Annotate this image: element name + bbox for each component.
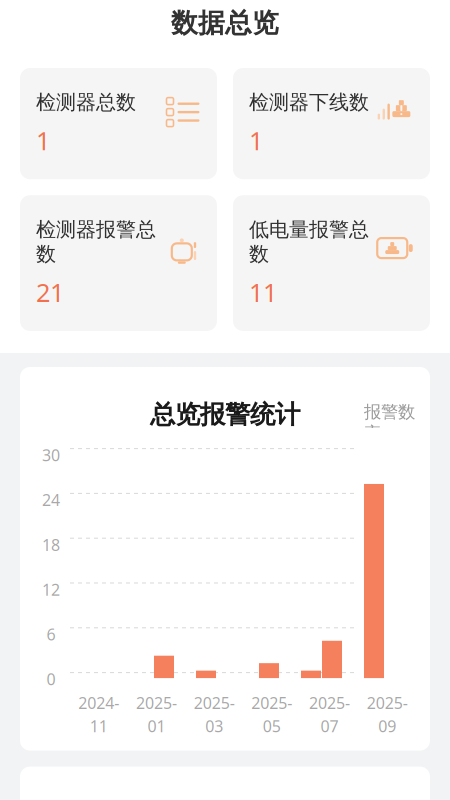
- button[interactable]: 检测器下线数: [233, 68, 430, 179]
- staticText: 09: [378, 715, 396, 736]
- staticText: 检测器报警总数: [36, 217, 156, 266]
- staticText: 11: [90, 715, 108, 736]
- staticText: 率: [364, 423, 381, 444]
- staticText: 12: [42, 579, 60, 600]
- staticText: 检测器下线数: [249, 90, 369, 115]
- staticText: 18: [42, 534, 60, 555]
- staticText: 05: [263, 715, 281, 736]
- staticText: 01: [147, 715, 165, 736]
- staticText: 2025-: [309, 692, 350, 713]
- button[interactable]: 低电量报警总数: [233, 195, 430, 331]
- staticText: 03: [205, 715, 223, 736]
- staticText: 2025-: [251, 692, 292, 713]
- staticText: 1: [36, 124, 50, 157]
- staticText: 30: [42, 444, 60, 466]
- staticText: 检测器总数: [36, 90, 136, 115]
- staticText: 11: [249, 275, 277, 309]
- button[interactable]: 检测器报警总数: [20, 195, 217, 331]
- staticText: 2025-: [194, 692, 235, 713]
- staticText: 0: [46, 668, 55, 690]
- staticText: 2024-: [78, 692, 119, 713]
- staticText: 数据总览: [171, 7, 279, 39]
- staticText: 2025-: [367, 692, 408, 713]
- staticText: 21: [36, 275, 64, 309]
- staticText: 1: [249, 124, 263, 157]
- staticText: 07: [320, 715, 338, 736]
- staticText: 低电量报警总数: [249, 217, 369, 266]
- staticText: 总览报警统计: [150, 399, 300, 430]
- staticText: 2025-: [136, 692, 177, 713]
- button[interactable]: 检测器总数: [20, 68, 217, 179]
- staticText: 报警数: [364, 401, 415, 423]
- staticText: 24: [42, 489, 60, 510]
- staticText: 6: [46, 624, 55, 645]
